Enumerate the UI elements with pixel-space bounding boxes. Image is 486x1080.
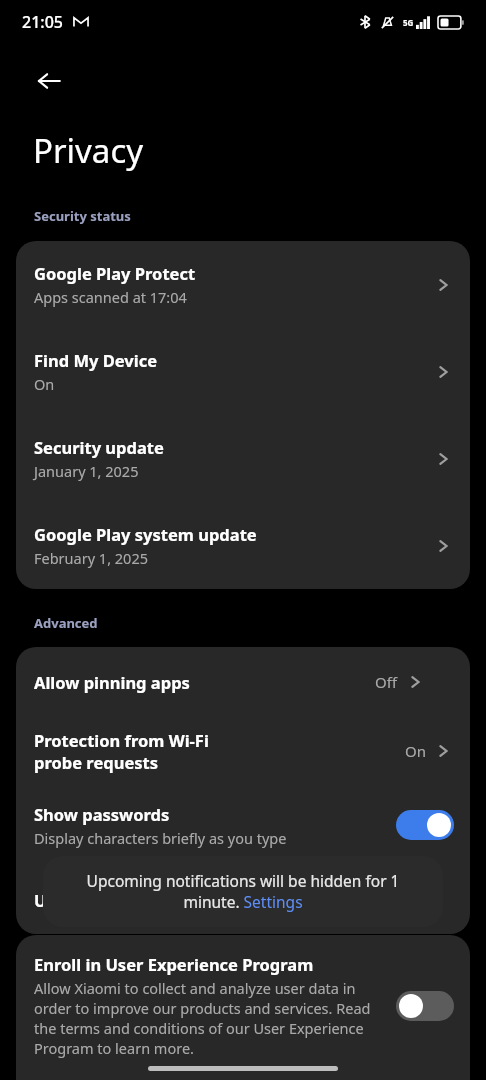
staticText: Allow pinning apps xyxy=(34,671,190,693)
button[interactable]: Find My Device xyxy=(16,328,470,415)
staticText: January 1, 2025 xyxy=(34,461,139,481)
button[interactable]: Protection from Wi-Fi probe requests xyxy=(16,716,470,785)
staticText: Google Play system update xyxy=(34,523,257,545)
button[interactable]: Upcoming notifications will be hidden fo… xyxy=(43,856,443,927)
staticText: Allow Xiaomi to collect and analyze user… xyxy=(34,978,386,1058)
button[interactable]: Security update xyxy=(16,415,470,502)
button[interactable]: Allow pinning apps xyxy=(16,647,470,716)
staticText: Security update xyxy=(34,436,164,458)
staticText: February 1, 2025 xyxy=(34,548,148,568)
staticText: 5G xyxy=(403,17,414,28)
staticText: On xyxy=(34,374,55,394)
staticText: Privacy xyxy=(33,128,144,173)
button[interactable]: Show passwords xyxy=(16,785,470,865)
staticText: Security status xyxy=(34,207,131,225)
staticText: Upcoming notifications will be hidden fo… xyxy=(67,870,419,913)
button[interactable]: Google Play system update xyxy=(16,502,470,589)
button[interactable]: Enroll in User Experience Program xyxy=(16,935,470,1080)
staticText: Show passwords xyxy=(34,803,170,825)
staticText: Display characters briefly as you type xyxy=(34,828,287,848)
button[interactable]: Toggle on xyxy=(396,810,454,840)
button[interactable]: Usage & diagnostics xyxy=(16,865,470,934)
staticText: Protection from Wi-Fi probe requests xyxy=(34,729,219,773)
staticText: On xyxy=(405,741,426,761)
button[interactable]: Google Play Protect xyxy=(16,241,470,328)
staticText: Advanced xyxy=(34,614,98,632)
staticText: Find My Device xyxy=(34,349,158,371)
staticText: 21:05 xyxy=(22,11,63,33)
staticText: Google Play Protect xyxy=(34,262,196,284)
button[interactable]: Back xyxy=(26,58,72,104)
staticText: Apps scanned at 17:04 xyxy=(34,287,187,307)
button[interactable]: Toggle off xyxy=(396,991,454,1021)
staticText: Usage & diagnostics xyxy=(34,889,200,911)
staticText: Enroll in User Experience Program xyxy=(34,953,314,975)
staticText: Off xyxy=(375,672,398,692)
